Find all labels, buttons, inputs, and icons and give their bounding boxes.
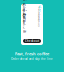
staticText: Latte [23, 12, 26, 23]
staticText: 2.50 [38, 7, 41, 18]
staticText: 3.80 [38, 12, 41, 23]
staticText: Order ahead and skip the line [11, 57, 53, 61]
staticText: Espresso [23, 2, 26, 23]
staticText: Checkout [25, 39, 39, 43]
staticText: Cold Brew [23, 12, 26, 33]
staticText: Edit [38, 2, 41, 12]
button[interactable]: Checkout [23, 39, 41, 43]
staticText: Fast, fresh coffee [15, 51, 49, 56]
staticText: Order [22, 0, 26, 18]
staticText: 4.20 [38, 17, 41, 28]
